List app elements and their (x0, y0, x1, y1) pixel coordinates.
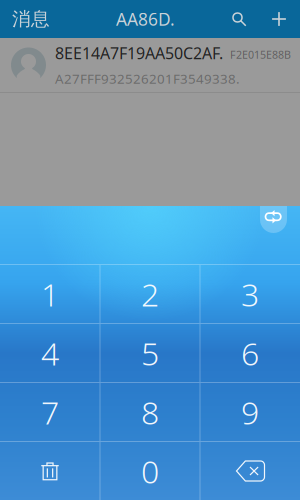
staticText: 4 (41, 332, 59, 374)
button[interactable]: 8EE14A7F19AA50C2AF. (0, 38, 300, 92)
button[interactable]: 7 (0, 383, 99, 441)
button[interactable]: New message (259, 0, 299, 38)
button[interactable]: 1 (0, 265, 99, 323)
staticText: 消息 (12, 7, 50, 30)
button[interactable]: 9 (200, 383, 299, 441)
button[interactable]: 3 (200, 265, 299, 323)
button[interactable]: 0 (100, 442, 199, 500)
staticText: 9 (241, 391, 259, 433)
staticText: AA86D. (116, 7, 175, 30)
button[interactable]: 消息 (0, 0, 62, 38)
staticText: 8 (141, 391, 159, 433)
staticText: 2 (141, 273, 159, 315)
button[interactable]: Switch keyboard (260, 206, 287, 233)
staticText: 7 (41, 391, 59, 433)
button[interactable]: 4 (0, 324, 99, 382)
button[interactable]: Search (219, 0, 259, 38)
button[interactable]: 5 (100, 324, 199, 382)
staticText: 1 (41, 273, 59, 315)
button[interactable]: 8 (100, 383, 199, 441)
staticText: 0 (141, 450, 159, 492)
button[interactable]: 6 (200, 324, 299, 382)
button[interactable]: Backspace (200, 442, 299, 500)
staticText: F2E015E88B (230, 48, 291, 62)
staticText: 3 (241, 273, 259, 315)
staticText: A27FFF932526201F3549338. (55, 70, 240, 87)
button[interactable]: Clear (0, 442, 99, 500)
staticText: 5 (141, 332, 159, 374)
staticText: 8EE14A7F19AA50C2AF. (55, 42, 223, 64)
staticText: 6 (241, 332, 259, 374)
button[interactable]: 2 (100, 265, 199, 323)
